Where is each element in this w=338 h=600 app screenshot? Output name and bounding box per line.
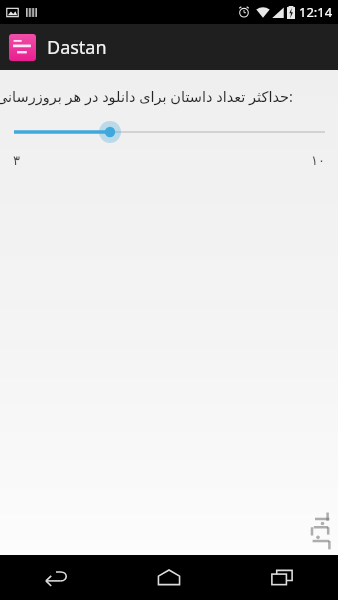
button[interactable]: Recent apps [225, 555, 338, 600]
staticText: حداکثر تعداد داستان برای دانلود در هر بر… [0, 86, 293, 106]
button[interactable]: Back [0, 555, 112, 600]
staticText: Dastan [47, 35, 107, 60]
button[interactable]: Home [112, 555, 225, 600]
staticText: 12:14 [299, 3, 333, 21]
staticText: ۳ [13, 153, 20, 168]
button[interactable] [0, 117, 338, 147]
staticText: ۱۰ [311, 153, 325, 168]
